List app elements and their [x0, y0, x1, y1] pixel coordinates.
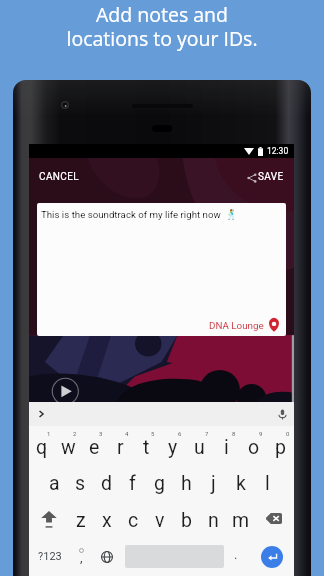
staticText: i [224, 436, 229, 459]
staticText: l [265, 472, 270, 495]
staticText: s [75, 472, 86, 495]
staticText: 5 [151, 430, 155, 437]
staticText: 7 [205, 430, 209, 437]
staticText: CANCEL [39, 171, 80, 183]
staticText: f [129, 472, 136, 495]
button[interactable]: k [227, 463, 254, 500]
button[interactable]: a [41, 463, 67, 500]
button[interactable]: g [146, 463, 173, 500]
staticText: 8 [232, 430, 236, 437]
button[interactable]: 5 [133, 426, 159, 463]
staticText: This is the soundtrack of my life right … [41, 209, 238, 220]
button[interactable]: n [200, 500, 227, 537]
staticText: 2 [73, 430, 77, 437]
button[interactable]: CANCEL [29, 161, 88, 193]
button[interactable]: . [227, 537, 244, 576]
button[interactable]: SAVE [239, 161, 294, 193]
staticText: k [236, 472, 246, 495]
button[interactable]: Enter [261, 546, 283, 568]
button[interactable]: 6 [159, 426, 186, 463]
staticText: ?123 [38, 550, 62, 563]
button[interactable]: ?123 [29, 537, 70, 576]
button[interactable]: 1 [29, 426, 55, 463]
staticText: w [61, 436, 76, 459]
staticText: c [128, 509, 139, 532]
staticText: u [194, 436, 205, 459]
button[interactable]: , [70, 537, 92, 576]
staticText: d [101, 472, 112, 495]
button[interactable]: x [94, 500, 120, 537]
button[interactable]: 4 [107, 426, 133, 463]
button[interactable]: Change language [92, 537, 122, 576]
staticText: x [102, 509, 112, 532]
staticText: . [234, 547, 238, 562]
staticText: v [155, 509, 165, 532]
button[interactable]: Voice input [274, 406, 290, 422]
staticText: o [248, 436, 260, 459]
button[interactable]: c [120, 500, 146, 537]
staticText: p [275, 436, 286, 459]
button[interactable]: l [254, 463, 281, 500]
button[interactable]: s [67, 463, 93, 500]
staticText: b [181, 509, 192, 532]
staticText: y [168, 436, 178, 459]
button[interactable]: b [173, 500, 200, 537]
button[interactable]: h [173, 463, 200, 500]
staticText: 6 [178, 430, 182, 437]
button[interactable]: DNA Lounge [209, 318, 281, 332]
button[interactable]: Backspace [254, 500, 294, 537]
button[interactable]: v [146, 500, 173, 537]
staticText: Add notes and locations to your IDs. [66, 1, 258, 52]
staticText: j [211, 472, 216, 495]
button[interactable]: 9 [240, 426, 267, 463]
staticText: 1 [47, 430, 51, 437]
button[interactable]: f [119, 463, 146, 500]
button[interactable]: More suggestions [33, 406, 49, 422]
button[interactable]: 0 [267, 426, 294, 463]
staticText: 0 [286, 430, 290, 437]
staticText: DNA Lounge [209, 320, 264, 331]
button[interactable]: 8 [213, 426, 240, 463]
staticText: 9 [259, 430, 263, 437]
staticText: SAVE [258, 171, 284, 183]
button[interactable]: d [93, 463, 119, 500]
staticText: 12:30 [267, 146, 289, 156]
staticText: a [49, 472, 60, 495]
staticText: q [36, 436, 48, 459]
staticText: g [154, 472, 165, 495]
button[interactable]: z [68, 500, 94, 537]
button[interactable]: Shift [29, 500, 68, 537]
button[interactable]: 3 [81, 426, 107, 463]
staticText: m [232, 509, 250, 532]
button[interactable]: 7 [186, 426, 213, 463]
staticText: 4 [125, 430, 129, 437]
staticText: h [181, 472, 192, 495]
staticText: n [208, 509, 219, 532]
staticText: , [80, 550, 83, 565]
button[interactable]: 2 [55, 426, 81, 463]
staticText: 3 [99, 430, 103, 437]
staticText: t [143, 436, 150, 459]
button[interactable]: j [200, 463, 227, 500]
staticText: z [76, 509, 86, 532]
staticText: r [117, 436, 124, 459]
button[interactable]: m [227, 500, 254, 537]
staticText: e [89, 436, 100, 459]
